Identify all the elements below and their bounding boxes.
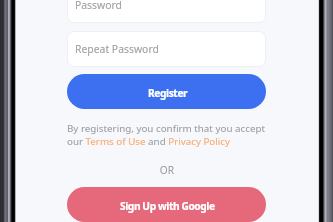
staticText: OR	[16, 163, 318, 177]
staticText: Repeat Password	[75, 42, 159, 56]
button[interactable]: Password	[67, 0, 266, 23]
button[interactable]: Repeat Password	[67, 31, 266, 67]
staticText: By registering, you confirm that you acc…	[67, 122, 266, 148]
staticText: Register	[148, 86, 188, 100]
button[interactable]: Register	[67, 74, 266, 109]
staticText: Sign Up with Google	[120, 199, 215, 213]
button[interactable]: Sign Up with Google	[67, 187, 266, 222]
staticText: Password	[75, 0, 122, 12]
